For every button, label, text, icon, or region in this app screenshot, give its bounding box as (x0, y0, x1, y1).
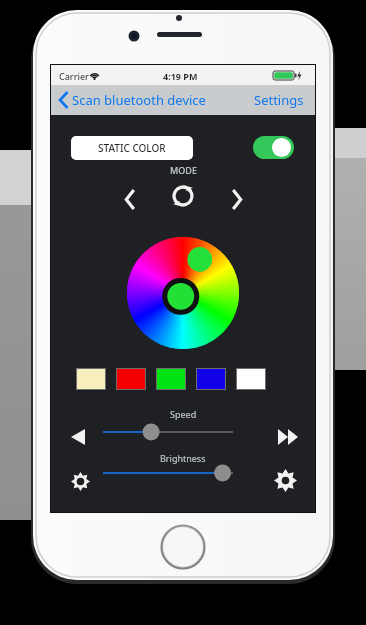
button[interactable]: STATIC COLOR (71, 136, 193, 160)
staticText: Brightness (160, 452, 206, 464)
button[interactable]: Next mode (223, 185, 249, 213)
button[interactable]: Scan bluetooth device (55, 85, 190, 115)
button[interactable]: Color wheel (127, 237, 239, 349)
button[interactable]: Slider (103, 421, 233, 443)
button[interactable]: Power toggle (253, 136, 294, 159)
button[interactable]: Cycle mode (168, 181, 198, 211)
button[interactable]: Dim (65, 466, 95, 496)
button[interactable]: Slider (103, 462, 233, 484)
button[interactable] (76, 368, 106, 390)
button[interactable]: Brighten (269, 464, 301, 496)
button[interactable] (196, 368, 226, 390)
staticText: Speed (170, 408, 197, 420)
button[interactable]: Settings (247, 85, 311, 115)
staticText: Carrier (59, 70, 89, 82)
staticText: MODE (170, 164, 197, 176)
button[interactable]: Faster (273, 424, 303, 450)
button[interactable] (116, 368, 146, 390)
button[interactable] (156, 368, 186, 390)
button[interactable]: Previous mode (117, 185, 143, 213)
button[interactable] (236, 368, 266, 390)
staticText: Settings (254, 91, 304, 109)
staticText: 4:19 PM (163, 70, 198, 82)
staticText: STATIC COLOR (98, 141, 166, 155)
staticText: Scan bluetooth device (72, 91, 206, 109)
button[interactable]: Slower (64, 424, 92, 450)
